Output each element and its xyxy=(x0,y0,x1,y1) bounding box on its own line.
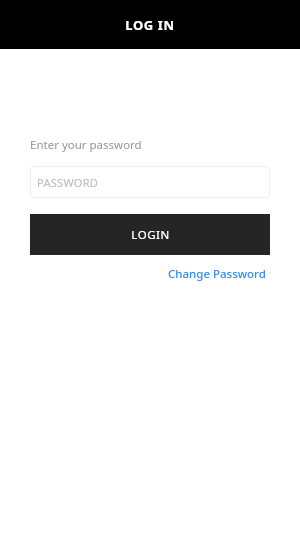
staticText: Change Password xyxy=(168,266,266,282)
button[interactable]: Change Password xyxy=(164,264,270,284)
button[interactable]: PASSWORD xyxy=(30,166,270,198)
button[interactable]: LOGIN xyxy=(30,214,270,255)
staticText: PASSWORD xyxy=(37,175,99,190)
staticText: Enter your password xyxy=(30,137,142,153)
staticText: LOG IN xyxy=(125,16,175,34)
staticText: LOGIN xyxy=(131,227,170,243)
